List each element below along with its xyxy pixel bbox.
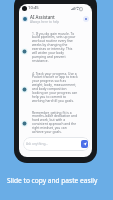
staticText: Slide to copy and paste easily	[7, 176, 98, 185]
staticText: Always here to help	[30, 20, 60, 24]
staticText: Remember, getting fit is a months-labor …	[32, 110, 78, 134]
staticText: 4. Track your progress. Use a Pocket tra…	[32, 71, 78, 103]
staticText: 10:45	[28, 5, 39, 11]
button[interactable]: Send	[81, 140, 88, 148]
staticText: AI Assistant	[30, 14, 55, 20]
button[interactable]: AI Assistant	[19, 12, 92, 25]
staticText: 1. If you do gain muscle. To build pipel…	[32, 31, 78, 63]
button[interactable]: More options	[83, 16, 89, 22]
staticText: Ask anything...	[26, 142, 48, 146]
button[interactable]: Ask anything...	[23, 137, 90, 151]
